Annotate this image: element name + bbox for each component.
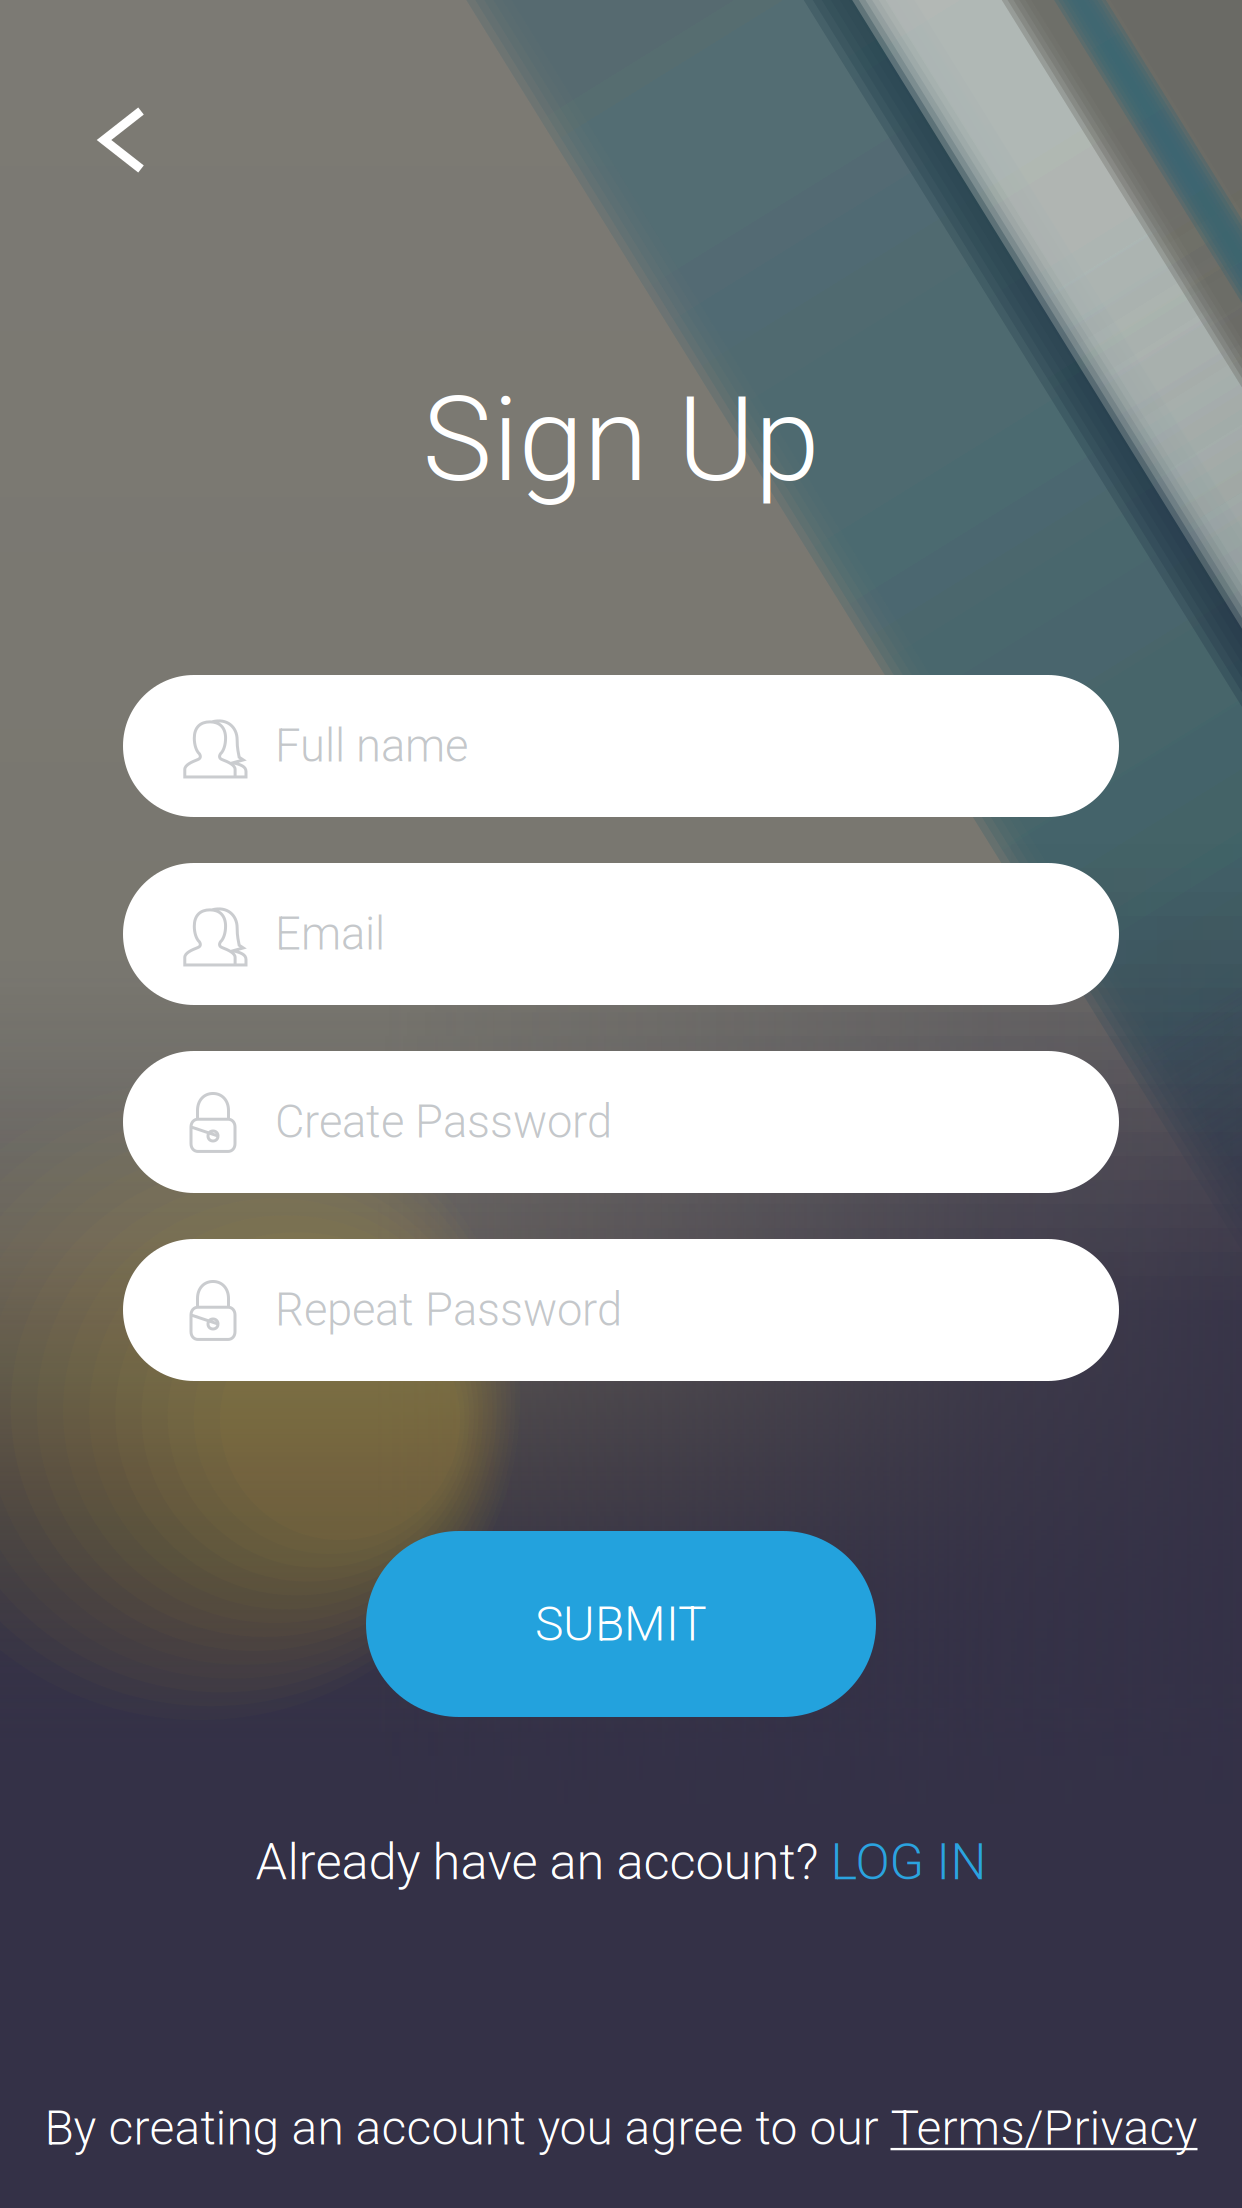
button[interactable]: By creating an account you agree to our <box>36 2092 1205 2164</box>
staticText: Sign Up <box>422 371 819 509</box>
button[interactable]: Already have an account? <box>247 1824 994 1900</box>
staticText: LOG IN <box>830 1832 986 1892</box>
button[interactable]: Email <box>123 863 1119 1005</box>
staticText: Terms/Privacy <box>890 2100 1197 2156</box>
staticText: Already have an account? <box>255 1832 830 1892</box>
button[interactable]: SUBMIT <box>366 1531 876 1717</box>
button[interactable]: Back <box>57 75 187 205</box>
staticText: Repeat Password <box>275 1283 622 1336</box>
button[interactable]: Repeat Password <box>123 1239 1119 1381</box>
staticText: By creating an account you agree to our <box>44 2100 890 2156</box>
button[interactable]: Create Password <box>123 1051 1119 1193</box>
staticText: Email <box>275 907 385 960</box>
button[interactable]: Full name <box>123 675 1119 817</box>
staticText: SUBMIT <box>535 1596 707 1652</box>
staticText: Full name <box>275 719 468 772</box>
staticText: Create Password <box>275 1095 612 1148</box>
